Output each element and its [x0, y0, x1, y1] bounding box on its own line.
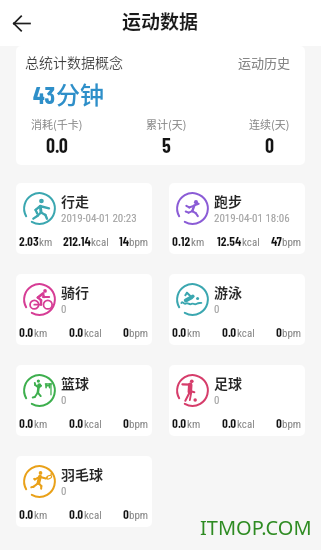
staticText: bpm [129, 418, 149, 431]
staticText: bpm [282, 236, 302, 249]
staticText: 骑行 [61, 282, 89, 302]
staticText: 0 [265, 133, 275, 157]
staticText: 212.14 [63, 233, 91, 249]
button[interactable]: 羽毛球 [16, 456, 152, 527]
staticText: bpm [129, 236, 149, 249]
button[interactable]: 总统计数据概念 [16, 46, 305, 165]
staticText: 0 [61, 303, 67, 316]
staticText: 43 [33, 80, 56, 109]
staticText: 消耗(千卡) [31, 116, 83, 132]
staticText: 0.0 [69, 506, 84, 522]
staticText: 0 [214, 303, 220, 316]
staticText: kcal [242, 236, 260, 249]
staticText: kcal [91, 236, 109, 249]
staticText: kcal [84, 418, 102, 431]
staticText: km [39, 236, 53, 249]
staticText: 0.0 [19, 506, 34, 522]
staticText: 0 [61, 394, 67, 407]
staticText: bpm [129, 509, 149, 522]
button[interactable]: 篮球 [16, 365, 152, 436]
button[interactable]: 骑行 [16, 274, 152, 345]
staticText: 0.0 [172, 415, 187, 431]
staticText: bpm [129, 327, 149, 340]
staticText: km [187, 418, 201, 431]
staticText: 0 [61, 485, 67, 498]
button[interactable]: Back [5, 7, 37, 39]
staticText: km [191, 236, 205, 249]
staticText: bpm [282, 327, 302, 340]
button[interactable]: 足球 [169, 365, 305, 436]
staticText: 47 [271, 233, 282, 249]
staticText: kcal [84, 509, 102, 522]
staticText: 0.0 [172, 324, 187, 340]
staticText: km [34, 509, 48, 522]
staticText: 0 [214, 394, 220, 407]
staticText: 2019-04-01 20:23 [61, 212, 137, 225]
staticText: 羽毛球 [61, 464, 103, 484]
staticText: 0.0 [222, 415, 237, 431]
staticText: 0 [123, 506, 129, 522]
staticText: 分钟 [56, 76, 104, 111]
staticText: 0.0 [69, 324, 84, 340]
button[interactable]: 跑步 [169, 183, 305, 254]
staticText: 0.12 [172, 233, 191, 249]
staticText: 0.0 [69, 415, 84, 431]
staticText: 0.0 [19, 324, 34, 340]
staticText: 运动数据 [122, 7, 199, 35]
staticText: 2.03 [19, 233, 39, 249]
staticText: 足球 [214, 373, 242, 393]
staticText: 行走 [61, 191, 89, 211]
staticText: kcal [237, 418, 255, 431]
staticText: 14 [119, 233, 129, 249]
staticText: 游泳 [214, 282, 242, 302]
staticText: 2019-04-01 18:06 [214, 212, 290, 225]
button[interactable]: 游泳 [169, 274, 305, 345]
staticText: 0 [276, 415, 282, 431]
staticText: 0 [123, 324, 129, 340]
staticText: kcal [84, 327, 102, 340]
staticText: 5 [162, 133, 171, 157]
staticText: bpm [282, 418, 302, 431]
staticText: 0 [123, 415, 129, 431]
staticText: kcal [237, 327, 255, 340]
staticText: ITMOP.COM [200, 514, 312, 541]
button[interactable]: 运动历史 [238, 53, 291, 72]
staticText: 总统计数据概念 [25, 52, 123, 72]
button[interactable]: 行走 [16, 183, 152, 254]
staticText: 跑步 [214, 191, 242, 211]
staticText: 0 [276, 324, 282, 340]
staticText: 连续(天) [249, 116, 290, 132]
staticText: km [187, 327, 201, 340]
staticText: km [34, 327, 48, 340]
staticText: 0.0 [19, 415, 34, 431]
staticText: 0.0 [46, 133, 68, 157]
staticText: 0.0 [222, 324, 237, 340]
staticText: 篮球 [61, 373, 89, 393]
staticText: 12.54 [217, 233, 242, 249]
staticText: km [34, 418, 48, 431]
staticText: 累计(天) [146, 116, 187, 132]
